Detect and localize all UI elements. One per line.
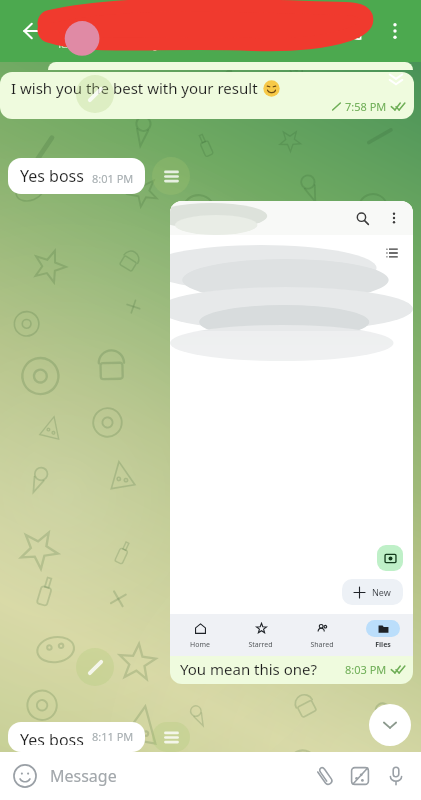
button[interactable] <box>152 157 190 195</box>
button[interactable]: New <box>342 579 403 605</box>
staticText: Yes boss <box>20 729 84 745</box>
staticText: New <box>372 586 391 598</box>
button[interactable]: Back <box>10 8 56 54</box>
button[interactable]: I wish you the best with your result <box>0 72 414 119</box>
button[interactable]: Scan <box>377 545 403 571</box>
staticText: Starred <box>248 640 273 650</box>
button[interactable]: Voice message <box>381 761 411 791</box>
staticText: last seen recently <box>58 35 160 52</box>
staticText: I wish you the best with your result <box>11 78 258 98</box>
button[interactable]: Home <box>170 614 230 656</box>
button[interactable]: Shared <box>291 614 352 656</box>
staticText: Home <box>190 640 210 650</box>
button[interactable] <box>152 722 190 752</box>
button[interactable]: Message <box>50 765 309 787</box>
button[interactable]: Starred <box>230 614 291 656</box>
button[interactable]: List view <box>381 242 403 264</box>
button[interactable]: More options <box>383 207 405 229</box>
staticText: You mean this one? <box>180 659 318 679</box>
button[interactable]: Emoji <box>10 761 40 791</box>
staticText: 8:03 PM <box>345 662 387 677</box>
button[interactable]: Search <box>351 207 373 229</box>
staticText: 7:58 PM <box>345 99 387 114</box>
staticText: 8:11 PM <box>92 729 134 744</box>
staticText: 8:01 PM <box>92 171 134 186</box>
button[interactable] <box>76 648 114 686</box>
button[interactable] <box>76 75 114 113</box>
button[interactable]: Files <box>352 614 413 656</box>
button[interactable]: Attach <box>309 761 339 791</box>
button[interactable]: More options <box>373 9 417 53</box>
button[interactable]: Yes boss <box>8 722 145 752</box>
button[interactable]: ​ <box>58 11 160 52</box>
staticText: Message <box>50 765 117 787</box>
button[interactable]: Jump to next unread <box>379 64 413 98</box>
button[interactable]: Search <box>170 201 413 684</box>
button[interactable]: Scroll to bottom <box>369 704 411 746</box>
staticText: Files <box>375 640 391 650</box>
button[interactable]: Call <box>331 9 375 53</box>
staticText: Shared <box>310 640 334 650</box>
button[interactable]: Yes boss <box>8 158 145 194</box>
button[interactable]: Stickers <box>345 761 375 791</box>
staticText: Yes boss <box>20 165 84 187</box>
